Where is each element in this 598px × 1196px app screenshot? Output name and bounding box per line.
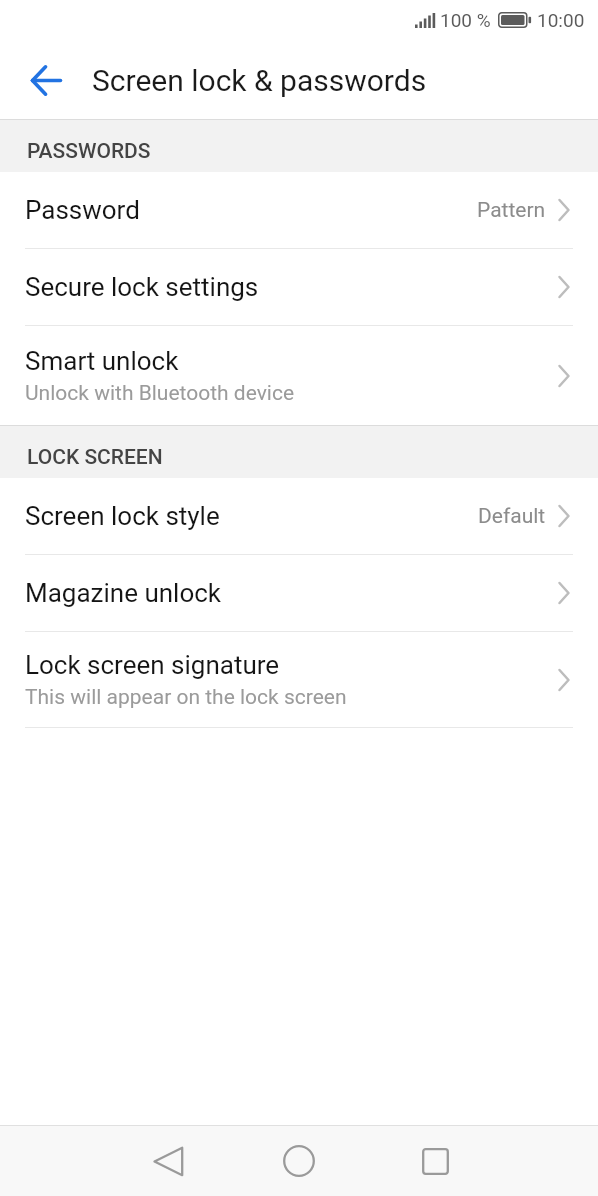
button[interactable] <box>411 1137 459 1185</box>
staticText: Secure lock settings <box>25 272 259 302</box>
staticText: 100 % <box>440 9 491 31</box>
staticText: Pattern <box>477 198 546 223</box>
staticText: This will appear on the lock screen <box>25 685 347 710</box>
button[interactable]: Password <box>0 172 598 248</box>
button[interactable]: Smart unlock <box>0 326 598 425</box>
staticText: Password <box>25 195 140 225</box>
staticText: Default <box>478 504 546 529</box>
staticText: Screen lock style <box>25 501 220 531</box>
staticText: Lock screen signature <box>25 650 280 680</box>
staticText: Unlock with Bluetooth device <box>25 381 295 406</box>
button[interactable] <box>275 1137 323 1185</box>
staticText: 10:00 <box>537 9 585 31</box>
staticText: PASSWORDS <box>27 139 151 164</box>
button[interactable]: Magazine unlock <box>0 555 598 631</box>
staticText: Magazine unlock <box>25 578 222 608</box>
button[interactable]: Lock screen signature <box>0 632 598 727</box>
button[interactable] <box>144 1137 192 1185</box>
staticText: Screen lock & passwords <box>92 63 427 98</box>
staticText: LOCK SCREEN <box>27 445 163 470</box>
button[interactable]: Secure lock settings <box>0 249 598 325</box>
button[interactable] <box>22 56 70 104</box>
staticText: Smart unlock <box>25 346 179 376</box>
button[interactable]: Screen lock style <box>0 478 598 554</box>
